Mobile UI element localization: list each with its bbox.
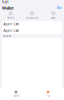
staticText: Apple Cash <box>3 29 19 32</box>
staticText: Wallet <box>2 5 14 11</box>
staticText: Scan <box>51 16 56 20</box>
staticText: Send <box>7 16 14 20</box>
staticText: › <box>60 22 61 27</box>
button[interactable]: Edit <box>57 6 62 10</box>
button[interactable]: Pay <box>32 90 64 97</box>
button[interactable]: Cards <box>0 90 32 97</box>
staticText: Apple Card <box>3 22 19 26</box>
staticText: Request <box>26 16 38 20</box>
button[interactable]: Apple Cash <box>2 27 62 34</box>
button[interactable]: Send <box>0 11 21 20</box>
staticText: Cards <box>12 94 19 97</box>
button[interactable]: Scan <box>43 11 64 20</box>
staticText: Edit <box>57 6 62 10</box>
button[interactable]: Apple Card <box>2 21 62 27</box>
staticText: Latest <box>3 34 11 38</box>
staticText: Pay <box>46 94 50 97</box>
button[interactable]: Request <box>21 11 43 20</box>
staticText: 9:41 <box>2 1 9 4</box>
